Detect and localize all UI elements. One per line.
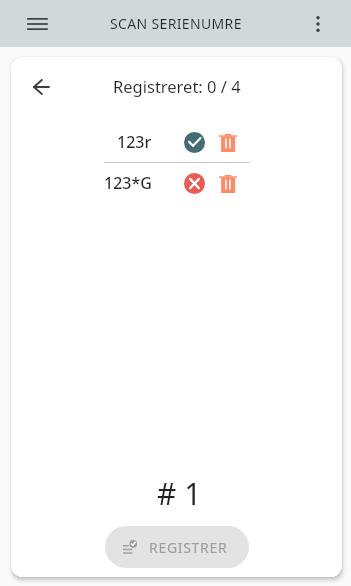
staticText: # 1 — [157, 473, 202, 514]
staticText: REGISTRER — [149, 538, 228, 557]
button[interactable]: Accepted — [179, 127, 210, 158]
button[interactable]: Delete — [212, 127, 243, 158]
button[interactable]: Delete — [212, 168, 243, 199]
button[interactable]: Back — [20, 65, 63, 108]
staticText: 123*G — [104, 172, 152, 194]
button[interactable]: REGISTRER — [105, 526, 249, 568]
button[interactable]: Rejected — [179, 168, 210, 199]
staticText: 123r — [117, 131, 152, 153]
staticText: SCAN SERIENUMRE — [110, 14, 242, 33]
staticText: Registreret: 0 / 4 — [113, 75, 241, 97]
button[interactable]: Menu — [18, 5, 56, 43]
button[interactable]: More options — [302, 8, 334, 40]
